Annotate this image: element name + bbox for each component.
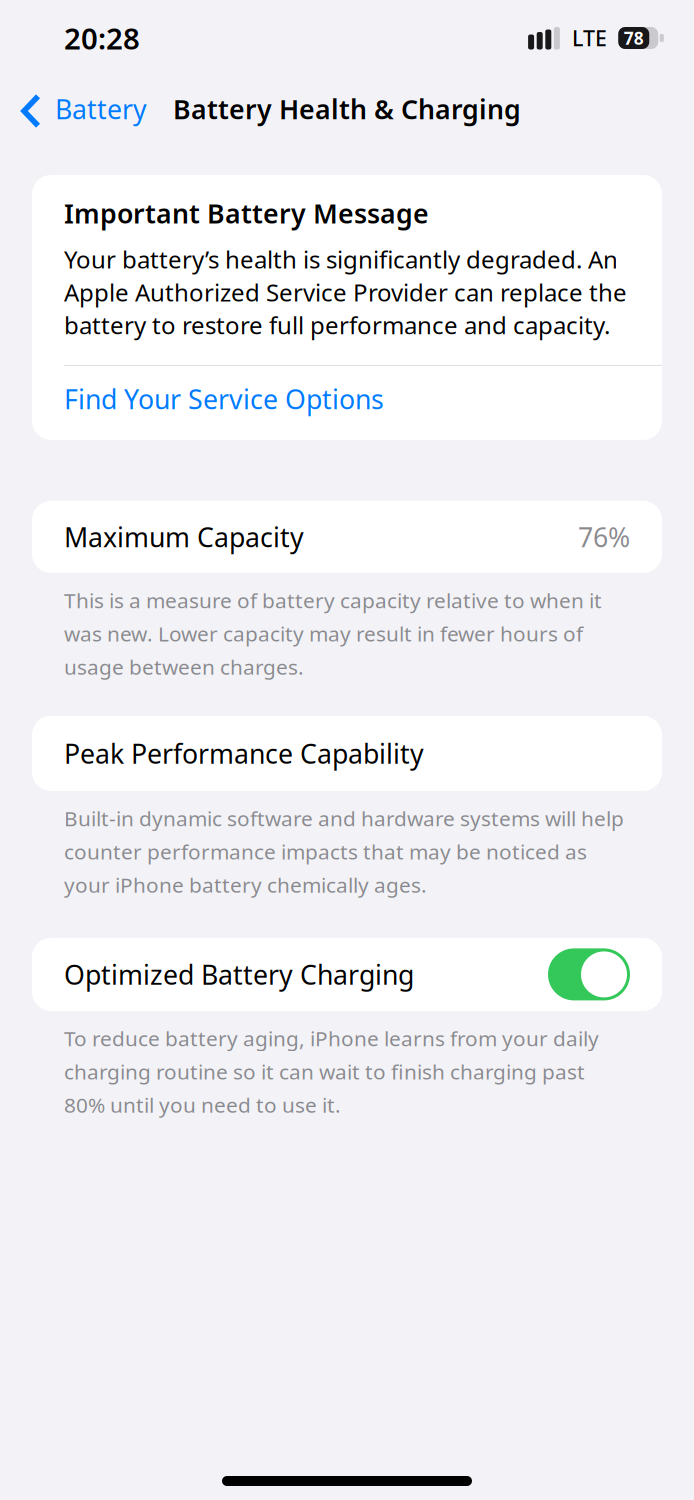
staticText: Built-in dynamic software and hardware s…	[64, 804, 624, 899]
staticText: Maximum Capacity	[64, 519, 304, 555]
staticText: Battery Health & Charging	[173, 91, 521, 127]
button[interactable]: Battery	[0, 76, 163, 142]
button[interactable]: Peak Performance Capability	[32, 716, 662, 791]
staticText: Your battery’s health is significantly d…	[64, 243, 627, 341]
staticText: Battery	[55, 91, 147, 127]
button[interactable]: Find Your Service Options	[32, 366, 662, 440]
staticText: To reduce battery aging, iPhone learns f…	[64, 1024, 599, 1119]
staticText: LTE	[572, 24, 607, 52]
staticText: Find Your Service Options	[64, 381, 384, 417]
staticText: Peak Performance Capability	[64, 736, 424, 771]
staticText: 76%	[578, 519, 630, 555]
button[interactable]: Optimized Battery Charging	[548, 948, 630, 1000]
staticText: Optimized Battery Charging	[64, 957, 414, 992]
staticText: Important Battery Message	[64, 195, 429, 231]
staticText: This is a measure of battery capacity re…	[64, 586, 602, 681]
staticText: 20:28	[64, 18, 140, 57]
staticText: 78	[624, 26, 644, 49]
